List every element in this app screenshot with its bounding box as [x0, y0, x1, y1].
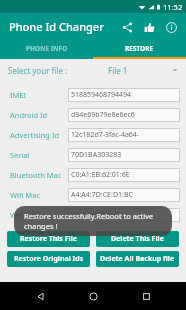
staticText: Select your file :	[8, 65, 68, 76]
button[interactable]: Restore This File	[7, 231, 90, 247]
staticText: Phone Id Changer	[9, 19, 104, 34]
staticText: d94e69b79e8e6ec6	[71, 110, 135, 120]
button[interactable]: d94e69b79e8e6ec6	[68, 108, 180, 122]
staticText: Serial	[10, 150, 30, 160]
staticText: 518859468794494	[71, 90, 132, 100]
staticText: C0:A1:EB:62:01:6E	[71, 170, 130, 180]
staticText: Restore This File	[20, 234, 77, 244]
staticText: 70D1BA303283	[71, 150, 122, 160]
button[interactable]: C0:A1:EB:62:01:6E	[68, 168, 180, 182]
button[interactable]: 518859468794494	[68, 88, 180, 102]
button[interactable]: PHONE INFO	[0, 40, 93, 57]
staticText: Restore successfully.Reboot to active ch…	[24, 211, 162, 231]
staticText: Wifi SSID	[10, 210, 42, 220]
staticText: PHONE INFO	[26, 44, 68, 53]
button[interactable]: Info	[160, 16, 182, 38]
staticText: Wifi Mac	[10, 190, 40, 200]
staticText: Delete All Backup file	[100, 254, 175, 264]
button[interactable]: Share	[116, 16, 138, 38]
staticText: Delete This File	[111, 234, 164, 244]
button[interactable]: Delete This File	[96, 231, 179, 247]
staticText: RESTORE	[125, 44, 154, 53]
staticText: 11:52	[163, 2, 183, 12]
staticText: "DxDW6k5csA"	[71, 210, 120, 220]
button[interactable]: Home	[80, 283, 106, 309]
button[interactable]: RESTORE	[93, 40, 186, 57]
button[interactable]: Select your file :	[0, 59, 186, 81]
staticText: Bluetooth Mac	[10, 170, 62, 180]
staticText: IMEI	[10, 90, 27, 100]
button[interactable]: 70D1BA303283	[68, 148, 180, 162]
staticText: Restore Original Ids	[14, 254, 84, 264]
staticText: 12c182d7-3fac-4a64-a0b4-4563a99a5f	[71, 130, 177, 140]
button[interactable]: Back	[27, 283, 53, 309]
button[interactable]: Restore Original Ids	[7, 251, 90, 267]
button[interactable]: "DxDW6k5csA"	[68, 208, 180, 222]
button[interactable]: A4:A4:7D:CE:D1:BC	[68, 188, 180, 202]
button[interactable]: Delete All Backup file	[96, 251, 179, 267]
staticText: File 1	[108, 65, 128, 76]
staticText: A4:A4:7D:CE:D1:BC	[71, 190, 133, 200]
staticText: Advertising Id	[10, 130, 60, 140]
button[interactable]: 12c182d7-3fac-4a64-a0b4-4563a99a5f	[68, 128, 180, 142]
button[interactable]: Rate	[138, 16, 160, 38]
staticText: Android Id	[10, 110, 48, 120]
button[interactable]: Recents	[133, 283, 159, 309]
